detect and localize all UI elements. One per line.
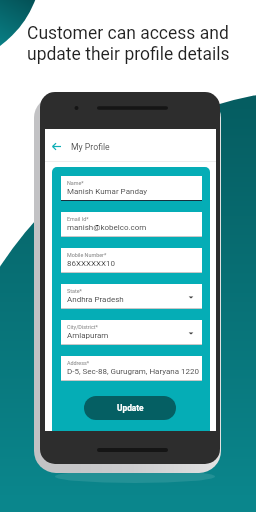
button[interactable]: Email Id*	[61, 212, 202, 237]
button[interactable]: Name*	[61, 176, 202, 201]
staticText: My Profile	[71, 142, 110, 152]
staticText: Amlapuram	[67, 331, 109, 340]
button[interactable]: City/District*	[61, 320, 202, 345]
staticText: Customer can access and update their pro…	[27, 23, 230, 65]
button[interactable]: Address*	[61, 356, 202, 381]
button[interactable]: State*	[61, 284, 202, 309]
staticText: manish@kobelco.com	[67, 223, 147, 232]
staticText: Andhra Pradesh	[67, 295, 124, 304]
button[interactable]: Update	[84, 396, 176, 420]
staticText: Update	[117, 403, 144, 413]
staticText: City/District*	[67, 324, 98, 330]
staticText: Email Id*	[67, 216, 89, 222]
staticText: Mobile Number*	[67, 252, 107, 258]
button[interactable]: Mobile Number*	[61, 248, 202, 273]
staticText: 86XXXXXX10	[67, 259, 116, 268]
staticText: D-5, Sec-88, Gurugram, Haryana 1220	[67, 367, 200, 376]
button[interactable]: Back	[45, 135, 67, 157]
staticText: Name*	[67, 180, 84, 186]
staticText: State*	[67, 288, 82, 294]
staticText: Address*	[67, 360, 90, 366]
staticText: Manish Kumar Panday	[67, 187, 147, 196]
